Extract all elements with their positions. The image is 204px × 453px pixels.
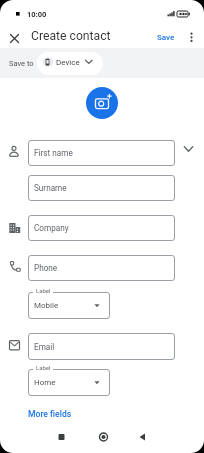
staticText: More fields [28,409,72,419]
button[interactable] [28,292,110,319]
button[interactable] [7,31,22,46]
button[interactable] [185,31,198,46]
staticText: Save to [9,59,34,68]
staticText: First name [34,148,73,158]
staticText: Save [157,33,175,42]
button[interactable] [90,428,116,446]
button[interactable]: More fields [28,407,88,421]
button[interactable]: First name [28,140,175,166]
staticText: Surname [34,183,67,193]
button[interactable] [132,428,158,446]
staticText: Label [36,364,51,371]
button[interactable]: Phone [28,255,175,281]
staticText: Label [36,287,51,294]
button[interactable] [28,369,110,396]
staticText: Create contact [31,29,111,43]
button[interactable] [48,428,74,446]
button[interactable] [86,87,118,119]
button[interactable]: Email [28,333,175,360]
button[interactable]: Save [153,30,179,45]
button[interactable]: Surname [28,175,175,201]
button[interactable] [37,52,103,75]
staticText: Home [34,378,56,387]
staticText: Company [34,223,69,233]
staticText: 10:00 [27,10,47,19]
staticText: Email [34,342,55,352]
button[interactable]: Company [28,215,175,241]
staticText: Phone [34,263,58,273]
staticText: Device [56,58,80,67]
staticText: Mobile [34,301,59,310]
